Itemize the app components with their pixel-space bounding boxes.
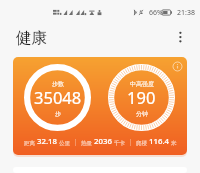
staticText: 距离 [24,140,35,147]
staticText: 分钟 [136,110,148,118]
staticText: 21:38 [177,8,195,18]
staticText: 步数 [52,80,64,88]
staticText: 热量 [81,140,92,147]
staticText: 2036 [94,136,112,147]
staticText: 32.18 [37,136,57,147]
staticText: 爬楼 [136,140,147,147]
staticText: 35048 [34,86,82,108]
staticText: 116.4 [149,136,169,147]
button[interactable]: More options [170,24,192,46]
staticText: 健康 [16,28,47,48]
staticText: 190 [127,86,156,108]
button[interactable]: Info [172,61,183,72]
staticText: 公里 [59,140,70,147]
staticText: 千卡 [114,140,125,147]
staticText: 中高强度 [130,80,154,88]
staticText: 66% [149,8,163,18]
staticText: 步 [55,110,61,118]
staticText: 米 [171,140,177,147]
button[interactable]: Info [13,57,187,155]
